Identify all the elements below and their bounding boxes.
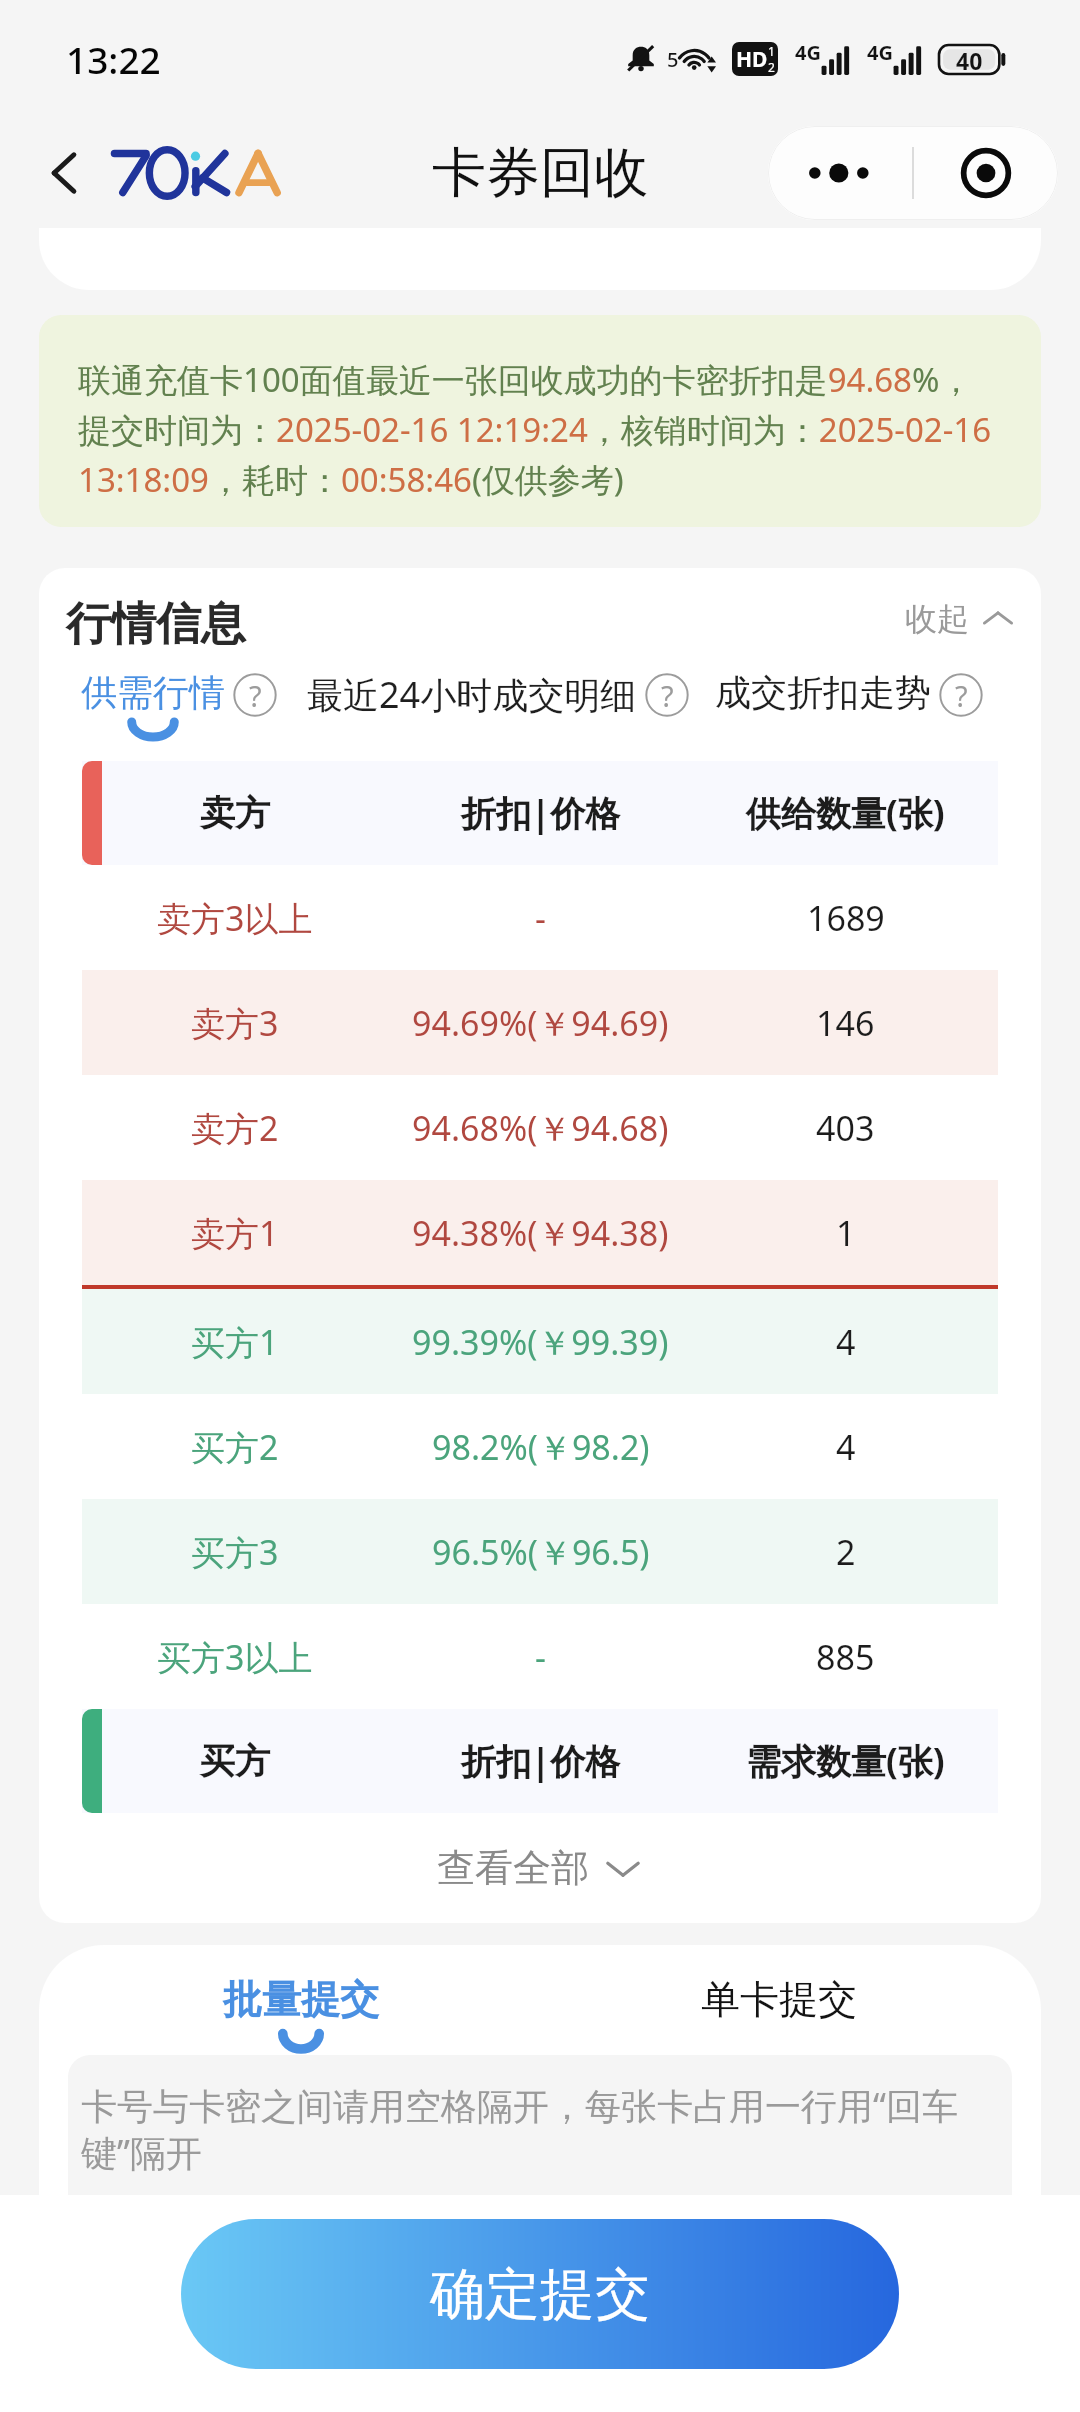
staticText: 供给数量(张) bbox=[746, 789, 945, 837]
staticText: ? bbox=[955, 676, 968, 715]
staticText: 成交折扣走势 bbox=[715, 670, 931, 715]
staticText: 1689 bbox=[807, 895, 885, 941]
staticText: 行情信息 bbox=[66, 596, 246, 653]
staticText: 885 bbox=[816, 1634, 875, 1680]
button[interactable]: Back bbox=[26, 135, 102, 211]
button[interactable]: 买方1 bbox=[82, 1289, 998, 1394]
staticText: 查看全部 bbox=[437, 1844, 589, 1892]
staticText: 96.5%(￥96.5) bbox=[432, 1529, 650, 1575]
staticText: 卖方3以上 bbox=[157, 895, 313, 941]
staticText: 收起 bbox=[905, 599, 969, 639]
staticText: 4G bbox=[795, 39, 821, 66]
staticText: 卡券回收 bbox=[432, 139, 648, 207]
staticText: 确定提交 bbox=[430, 2260, 650, 2329]
staticText: 5 bbox=[667, 46, 679, 73]
button[interactable]: 卖方3 bbox=[82, 970, 998, 1075]
staticText: ? bbox=[249, 676, 262, 715]
staticText: 卖方1 bbox=[191, 1210, 279, 1256]
staticText: 需求数量(张) bbox=[746, 1737, 945, 1785]
staticText: 2 bbox=[768, 59, 775, 75]
button[interactable]: 卖方2 bbox=[82, 1075, 998, 1180]
staticText: 13:22 bbox=[66, 34, 161, 84]
staticText: 买方3以上 bbox=[157, 1634, 313, 1680]
staticText: 1 bbox=[836, 1210, 856, 1256]
staticText: 折扣|价格 bbox=[461, 1737, 621, 1785]
staticText: 最近24小时成交明细 bbox=[307, 670, 637, 719]
staticText: 供需行情 bbox=[81, 670, 225, 715]
staticText: HD bbox=[736, 45, 768, 74]
button[interactable]: 卖方1 bbox=[82, 1180, 998, 1285]
staticText: 买方 bbox=[200, 1739, 270, 1783]
staticText: 4G bbox=[867, 39, 893, 66]
button[interactable]: 查看全部 bbox=[39, 1813, 1041, 1923]
button[interactable]: 成交折扣走势 bbox=[715, 670, 983, 715]
staticText: 折扣|价格 bbox=[461, 789, 621, 837]
staticText: ? bbox=[661, 676, 674, 715]
staticText: 买方2 bbox=[191, 1424, 279, 1470]
staticText: 40 bbox=[956, 45, 983, 74]
button[interactable]: 买方3以上 bbox=[82, 1604, 998, 1709]
button[interactable]: 最近24小时成交明细 bbox=[307, 670, 689, 719]
staticText: 98.2%(￥98.2) bbox=[432, 1424, 650, 1470]
staticText: - bbox=[535, 895, 546, 941]
staticText: 买方1 bbox=[191, 1319, 279, 1365]
staticText: 1 bbox=[768, 43, 775, 59]
staticText: - bbox=[535, 1634, 546, 1680]
staticText: 94.68%(￥94.68) bbox=[412, 1105, 669, 1151]
staticText: 卖方2 bbox=[191, 1105, 279, 1151]
button[interactable]: 买方2 bbox=[82, 1394, 998, 1499]
button[interactable]: 供需行情 bbox=[81, 670, 277, 737]
staticText: 99.39%(￥99.39) bbox=[412, 1319, 669, 1365]
staticText: 4 bbox=[836, 1319, 856, 1365]
staticText: 4 bbox=[836, 1424, 856, 1470]
staticText: 146 bbox=[816, 1000, 875, 1046]
staticText: 买方3 bbox=[191, 1529, 279, 1575]
staticText: 卡号与卡密之间请用空格隔开，每张卡占用一行用“回车键”隔开 bbox=[81, 2081, 988, 2176]
staticText: 94.38%(￥94.38) bbox=[412, 1210, 669, 1256]
button[interactable]: Close mini program bbox=[914, 126, 1058, 220]
staticText: 2 bbox=[836, 1529, 856, 1575]
staticText: 联通充值卡100面值最近一张回收成功的卡密折扣是94.68%， 提交时间为：20… bbox=[78, 357, 992, 501]
staticText: 94.69%(￥94.69) bbox=[412, 1000, 669, 1046]
button[interactable]: 确定提交 bbox=[181, 2219, 899, 2369]
staticText: 卖方 bbox=[200, 791, 270, 835]
button[interactable]: 单卡提交 bbox=[701, 1975, 857, 2024]
button[interactable]: 买方3 bbox=[82, 1499, 998, 1604]
staticText: 批量提交 bbox=[223, 1975, 379, 2024]
staticText: 卖方3 bbox=[191, 1000, 279, 1046]
staticText: 单卡提交 bbox=[701, 1975, 857, 2024]
button[interactable]: 卖方3以上 bbox=[82, 865, 998, 970]
staticText: 403 bbox=[816, 1105, 875, 1151]
button[interactable]: 收起 bbox=[903, 593, 1017, 645]
button[interactable]: 批量提交 bbox=[223, 1975, 379, 2049]
button[interactable]: More options bbox=[768, 126, 912, 220]
